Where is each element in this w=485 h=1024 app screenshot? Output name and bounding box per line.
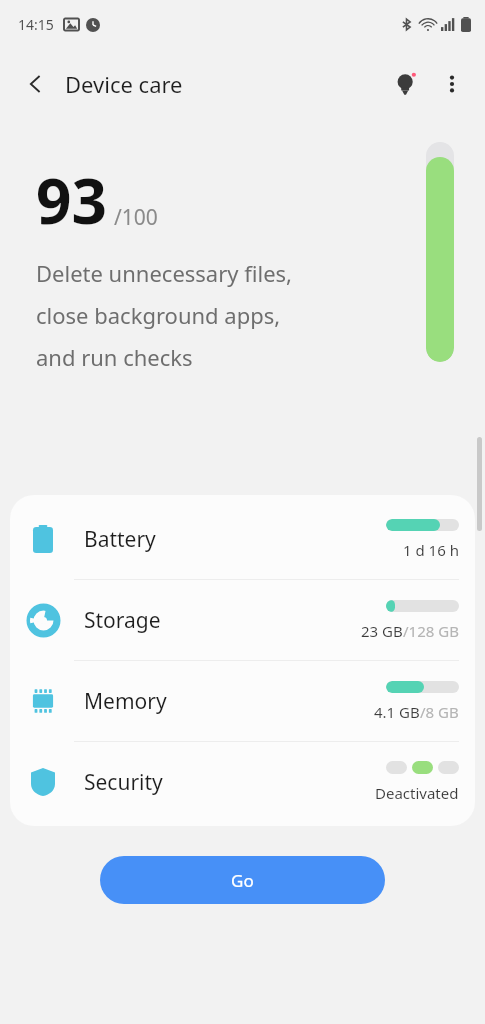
staticText: Battery: [84, 525, 156, 554]
staticText: 14:15: [18, 15, 54, 34]
staticText: Delete unnecessary files,: [36, 258, 292, 288]
button[interactable]: More options: [429, 61, 475, 107]
staticText: /8 GB: [420, 702, 459, 722]
staticText: Deactivated: [375, 783, 459, 803]
button[interactable]: Security: [10, 742, 475, 822]
staticText: 23 GB: [361, 621, 403, 641]
staticText: 93: [36, 158, 107, 242]
staticText: close background apps,: [36, 300, 281, 330]
staticText: 1 d 16 h: [403, 540, 459, 560]
button[interactable]: Memory: [10, 661, 475, 741]
staticText: and run checks: [36, 342, 193, 372]
staticText: /128 GB: [403, 621, 459, 641]
staticText: 4.1 GB: [374, 702, 420, 722]
staticText: Storage: [84, 606, 161, 635]
staticText: Go: [231, 869, 254, 892]
staticText: Memory: [84, 687, 167, 716]
button[interactable]: Go: [100, 856, 385, 904]
button[interactable]: Tips: [383, 61, 429, 107]
button[interactable]: Battery: [10, 499, 475, 579]
staticText: Security: [84, 768, 163, 797]
staticText: Device care: [65, 69, 183, 99]
staticText: /100: [114, 203, 158, 232]
button[interactable]: Back: [14, 62, 58, 106]
button[interactable]: Storage: [10, 580, 475, 660]
